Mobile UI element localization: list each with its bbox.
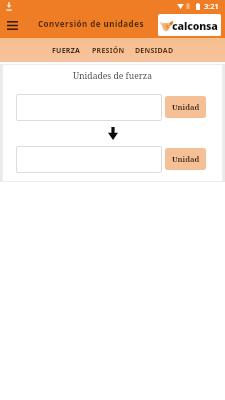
button[interactable]: Unidad [165, 96, 206, 118]
button[interactable]: Unidad [165, 148, 206, 170]
staticText: DENSIDAD [135, 46, 174, 56]
staticText: FUERZA [52, 46, 81, 56]
button[interactable]: Valor [16, 94, 162, 121]
button[interactable]: FUERZA [50, 42, 83, 60]
staticText: Conversión de unidades [38, 18, 144, 29]
staticText: Unidad [172, 154, 200, 164]
staticText: 3:21 [204, 1, 219, 11]
button[interactable]: Valor [16, 146, 162, 173]
button[interactable]: PRESIÓN [90, 42, 127, 60]
staticText: Unidades de fuerza [2, 70, 223, 82]
button[interactable]: DENSIDAD [133, 42, 176, 60]
staticText: Unidad [172, 102, 200, 112]
button[interactable]: Menu [2, 15, 23, 36]
button[interactable]: calconsa logo [158, 14, 221, 36]
staticText: calconsa [172, 19, 218, 33]
staticText: PRESIÓN [92, 46, 125, 56]
